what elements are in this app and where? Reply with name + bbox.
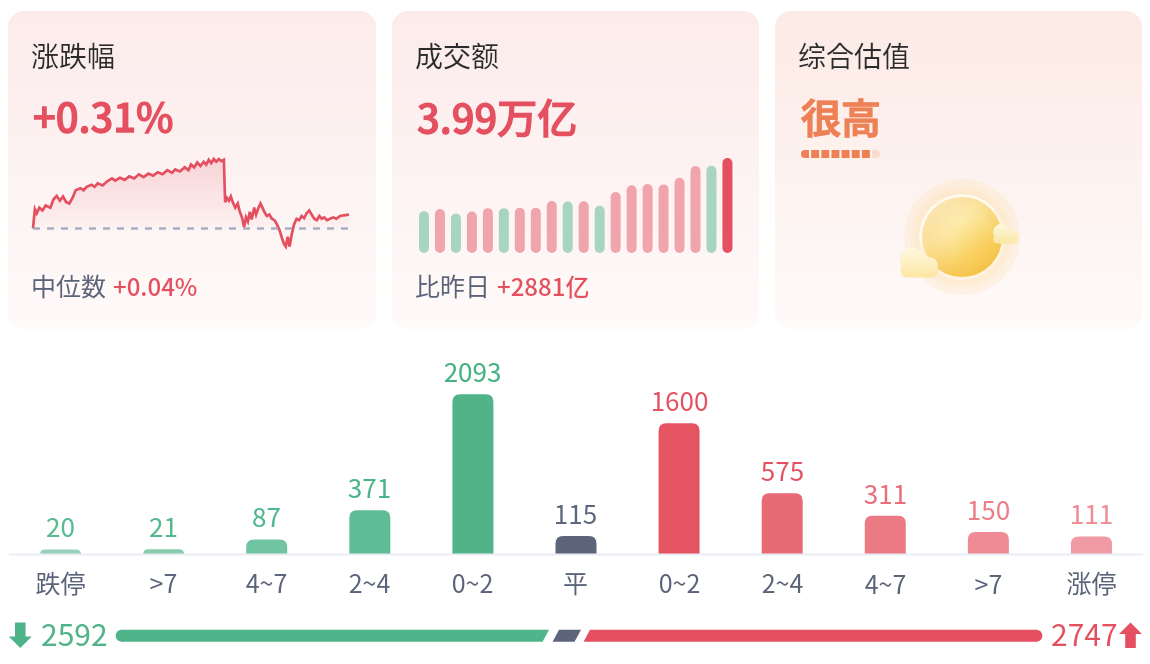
staticText: 2592 — [41, 611, 108, 654]
staticText: 115 — [524, 494, 627, 532]
staticText: 涨跌幅 — [31, 35, 116, 76]
staticText: 87 — [215, 497, 318, 535]
staticText: 150 — [937, 490, 1040, 528]
button[interactable]: 0~2 2093 — [421, 348, 524, 600]
button[interactable]: 涨跌幅 — [8, 11, 376, 329]
staticText: +2881亿 — [497, 268, 590, 303]
button[interactable]: 平 115 — [524, 490, 627, 600]
staticText: 0~2 — [628, 564, 731, 600]
staticText: 3.99万亿 — [417, 87, 578, 145]
button[interactable]: 涨停 111 — [1040, 490, 1143, 600]
button[interactable]: 下跌 2592 家 — [6, 616, 110, 656]
staticText: 成交额 — [415, 35, 500, 76]
staticText: 2747 — [1051, 611, 1118, 654]
staticText: 很高 — [801, 87, 881, 145]
staticText: 2~4 — [731, 564, 834, 600]
button[interactable]: 上涨 2747 家 — [1046, 616, 1144, 656]
button[interactable]: 0~2 1600 — [628, 377, 731, 600]
staticText: 4~7 — [834, 565, 937, 601]
staticText: +0.04% — [113, 268, 198, 303]
staticText: >7 — [937, 565, 1040, 601]
button[interactable]: 2~4 575 — [731, 447, 834, 600]
staticText: 371 — [318, 468, 421, 506]
staticText: 中位数 — [31, 267, 107, 303]
button[interactable]: 成交额 — [392, 11, 759, 329]
staticText: 20 — [9, 507, 112, 545]
staticText: 跌停 — [9, 564, 112, 600]
staticText: >7 — [112, 564, 215, 600]
button[interactable]: 综合估值 — [775, 11, 1142, 329]
button[interactable]: 4~7 311 — [834, 470, 937, 601]
button[interactable]: 跌停 20 — [9, 503, 112, 600]
button[interactable]: 2~4 371 — [318, 464, 421, 600]
staticText: 2093 — [421, 352, 524, 390]
staticText: 4~7 — [215, 564, 318, 600]
staticText: 0~2 — [421, 564, 524, 600]
staticText: +0.31% — [33, 86, 174, 144]
staticText: 111 — [1040, 494, 1143, 532]
staticText: 1600 — [628, 381, 731, 419]
button[interactable]: >7 150 — [937, 486, 1040, 601]
button[interactable]: 4~7 87 — [215, 493, 318, 600]
button[interactable]: >7 21 — [112, 503, 215, 600]
button[interactable]: 涨跌家数比例 — [114, 624, 1044, 650]
staticText: 综合估值 — [798, 35, 911, 76]
staticText: 2~4 — [318, 564, 421, 600]
staticText: 21 — [112, 507, 215, 545]
staticText: 比昨日 — [415, 267, 491, 303]
staticText: 平 — [524, 564, 627, 600]
staticText: 311 — [834, 474, 937, 512]
staticText: 涨停 — [1040, 564, 1143, 600]
staticText: 575 — [731, 451, 834, 489]
